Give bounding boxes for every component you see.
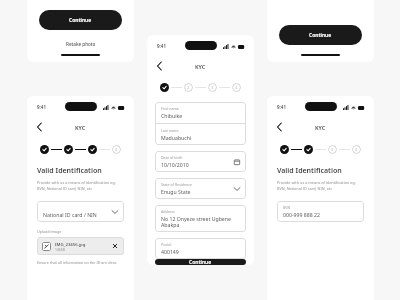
staticText: Date of birth bbox=[161, 155, 183, 160]
staticText: 9:41 bbox=[37, 104, 46, 110]
staticText: Provide with us a means of identificatio… bbox=[277, 180, 356, 191]
button[interactable]: Retake photo bbox=[60, 39, 102, 49]
staticText: First name bbox=[161, 106, 179, 111]
staticText: 10/10/2010 bbox=[161, 161, 189, 168]
button[interactable]: First name bbox=[155, 102, 246, 123]
staticText: 146KB bbox=[55, 247, 65, 251]
button[interactable]: Continue bbox=[39, 10, 122, 30]
button[interactable]: IMG_23456.jpg bbox=[37, 237, 124, 255]
button[interactable]: Postal bbox=[155, 238, 246, 259]
staticText: IMG_23456.jpg bbox=[55, 241, 86, 247]
staticText: Last name bbox=[161, 128, 179, 133]
button[interactable]: Continue bbox=[155, 259, 246, 265]
button[interactable]: Back bbox=[152, 59, 166, 73]
button[interactable]: Remove file bbox=[111, 242, 119, 250]
staticText: 000-999 888 22 bbox=[283, 211, 321, 218]
staticText: 9:41 bbox=[157, 43, 166, 49]
button[interactable]: Address bbox=[155, 205, 246, 232]
staticText: 3 bbox=[331, 147, 334, 152]
staticText: Enugu State bbox=[161, 188, 191, 195]
staticText: State of Residence bbox=[161, 182, 193, 187]
button[interactable]: State of Residence bbox=[155, 178, 246, 199]
staticText: No 12 Onyeze street Ugbene Abakpa bbox=[161, 215, 240, 228]
staticText: Address bbox=[161, 209, 175, 214]
staticText: Provide with us a means of identificatio… bbox=[37, 180, 116, 191]
button[interactable]: Back bbox=[272, 120, 286, 134]
staticText: Continue bbox=[189, 259, 212, 265]
staticText: Continue bbox=[69, 17, 92, 24]
staticText: Upload image bbox=[37, 229, 62, 234]
staticText: Continue bbox=[309, 32, 332, 39]
button[interactable]: Date of birth bbox=[155, 151, 246, 172]
staticText: Retake photo bbox=[66, 41, 96, 47]
staticText: 4 bbox=[235, 85, 238, 90]
staticText: BVN bbox=[283, 205, 291, 210]
staticText: KYC bbox=[195, 63, 206, 70]
button[interactable]: Continue bbox=[279, 25, 362, 45]
staticText: 9:41 bbox=[277, 104, 286, 110]
staticText: KYC bbox=[315, 124, 326, 131]
staticText: National ID card / NIN bbox=[43, 211, 97, 218]
staticText: Maduabuchi bbox=[161, 134, 192, 141]
staticText: 2 bbox=[187, 85, 190, 90]
button[interactable]: National ID card / NIN bbox=[37, 201, 124, 222]
staticText: Chibuike bbox=[161, 112, 183, 119]
button[interactable]: Back bbox=[32, 120, 46, 134]
staticText: Valid Identification bbox=[37, 166, 102, 176]
staticText: Postal bbox=[161, 242, 172, 247]
staticText: 400149 bbox=[161, 248, 179, 255]
staticText: 4 bbox=[355, 147, 358, 152]
staticText: 4 bbox=[115, 147, 118, 152]
staticText: Valid Identification bbox=[277, 166, 342, 176]
staticText: KYC bbox=[75, 124, 86, 131]
button[interactable]: BVN bbox=[277, 201, 364, 222]
staticText: 3 bbox=[211, 85, 214, 90]
staticText: Ensure that all information on the ID ar… bbox=[37, 260, 117, 265]
button[interactable]: Last name bbox=[155, 124, 246, 145]
